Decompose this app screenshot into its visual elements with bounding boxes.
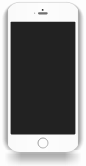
button[interactable]: Home button bbox=[38, 138, 48, 148]
button[interactable]: Phone display bbox=[11, 22, 76, 135]
